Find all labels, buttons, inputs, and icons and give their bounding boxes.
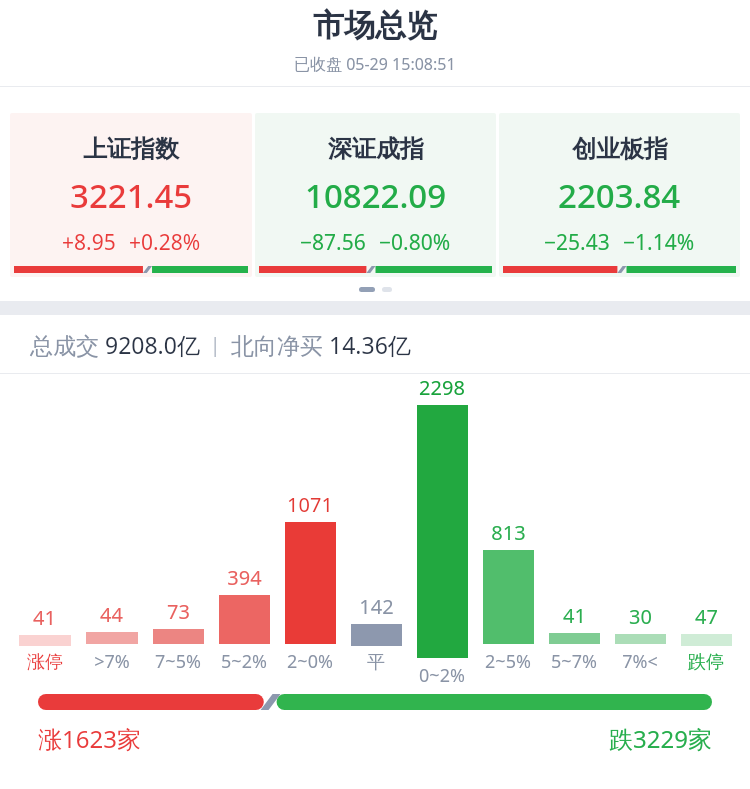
staticText: >7% xyxy=(94,649,130,674)
staticText: +0.28% xyxy=(129,228,201,257)
staticText: −0.80% xyxy=(379,228,451,257)
staticText: 1071 xyxy=(287,491,333,518)
staticText: 北向净买 xyxy=(231,329,329,360)
staticText: 813 xyxy=(491,519,526,546)
staticText: 7%< xyxy=(622,649,658,674)
staticText: −25.43 xyxy=(544,228,610,257)
button[interactable] xyxy=(359,287,375,292)
staticText: 44 xyxy=(100,601,123,628)
staticText: 跌3229家 xyxy=(609,722,712,755)
button[interactable]: 深证成指 xyxy=(255,113,496,277)
staticText: 2~0% xyxy=(287,649,333,674)
staticText: 2~5% xyxy=(485,649,531,674)
staticText: 总成交 xyxy=(30,329,105,360)
staticText: 5~2% xyxy=(221,649,267,674)
staticText: 9208.0亿 xyxy=(105,329,200,360)
button[interactable] xyxy=(382,287,392,292)
staticText: 涨停 xyxy=(27,651,63,674)
button[interactable]: 41 xyxy=(11,374,739,684)
staticText: 47 xyxy=(695,603,718,630)
staticText: 73 xyxy=(167,598,190,625)
staticText: 7~5% xyxy=(155,649,201,674)
staticText: 30 xyxy=(629,603,652,630)
staticText: 0~2% xyxy=(419,663,465,684)
staticText: | xyxy=(200,332,231,358)
staticText: 平 xyxy=(367,651,385,674)
button[interactable]: 总成交 xyxy=(0,315,750,373)
staticText: 已收盘 05-29 15:08:51 xyxy=(294,53,456,75)
staticText: 142 xyxy=(359,593,394,620)
staticText: −87.56 xyxy=(300,228,366,257)
button[interactable]: 上证指数 xyxy=(10,113,252,277)
staticText: 5~7% xyxy=(551,649,597,674)
staticText: 市场总览 xyxy=(313,6,437,45)
staticText: 涨1623家 xyxy=(38,722,141,755)
button[interactable]: 创业板指 xyxy=(499,113,740,277)
staticText: 10822.09 xyxy=(305,173,447,218)
staticText: 跌停 xyxy=(688,651,724,674)
staticText: 创业板指 xyxy=(572,134,668,164)
staticText: 41 xyxy=(33,604,56,631)
staticText: 上证指数 xyxy=(83,134,179,164)
staticText: 深证成指 xyxy=(328,134,424,164)
staticText: 394 xyxy=(227,564,262,591)
staticText: −1.14% xyxy=(623,228,695,257)
staticText: 41 xyxy=(563,602,586,629)
staticText: 2203.84 xyxy=(558,173,681,218)
staticText: 14.36亿 xyxy=(329,329,411,360)
staticText: 2298 xyxy=(419,374,465,401)
staticText: +8.95 xyxy=(62,228,116,257)
staticText: 3221.45 xyxy=(70,173,193,218)
